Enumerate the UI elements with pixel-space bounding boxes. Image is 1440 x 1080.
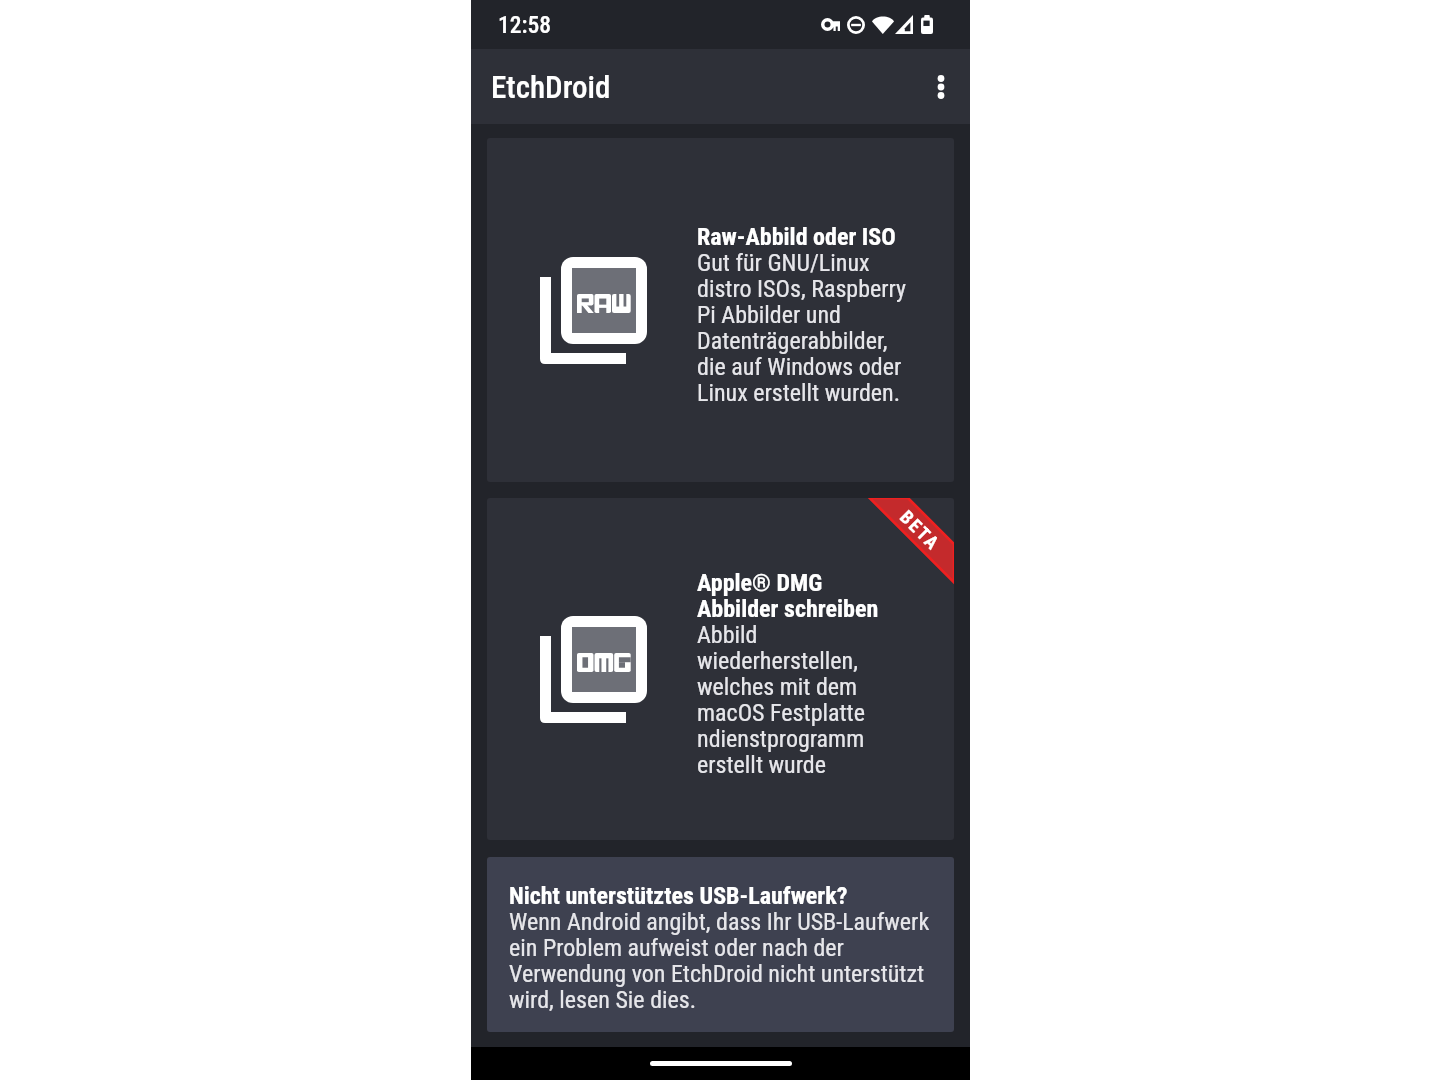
staticText: Abbilder schreiben	[697, 596, 879, 622]
staticText: EtchDroid	[491, 69, 611, 105]
button[interactable]: More options	[917, 63, 965, 111]
staticText: Datenträgerabbilder,	[697, 328, 888, 354]
staticText: Verwendung von EtchDroid nicht unterstüt…	[509, 961, 925, 987]
staticText: Gut für GNU/Linux	[697, 250, 870, 276]
staticText: Abbild	[697, 622, 758, 648]
button[interactable]: Apple® DMG	[487, 498, 954, 840]
staticText: distro ISOs, Raspberry	[697, 276, 907, 302]
button[interactable]: Raw-Abbild oder ISO	[487, 138, 954, 482]
staticText: Nicht unterstütztes USB-Laufwerk?	[509, 883, 848, 909]
staticText: Raw-Abbild oder ISO	[697, 224, 896, 250]
staticText: Linux erstellt wurden.	[697, 380, 901, 406]
staticText: ndienstprogramm	[697, 726, 865, 752]
staticText: ein Problem aufweist oder nach der	[509, 935, 844, 961]
staticText: BETA	[895, 506, 945, 556]
staticText: Wenn Android angibt, dass Ihr USB-Laufwe…	[509, 909, 930, 935]
staticText: wird, lesen Sie dies.	[509, 987, 697, 1013]
staticText: 12:58	[498, 11, 551, 39]
staticText: erstellt wurde	[697, 752, 826, 778]
button[interactable]: Nicht unterstütztes USB-Laufwerk?	[487, 857, 954, 1032]
staticText: Pi Abbilder und	[697, 302, 841, 328]
staticText: die auf Windows oder	[697, 354, 902, 380]
staticText: welches mit dem	[697, 674, 858, 700]
staticText: wiederherstellen,	[697, 648, 858, 674]
staticText: macOS Festplatte	[697, 700, 865, 726]
staticText: Apple® DMG	[697, 570, 823, 596]
